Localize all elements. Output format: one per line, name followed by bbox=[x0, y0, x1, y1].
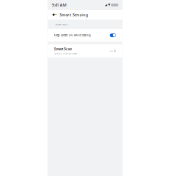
staticText: Smart Sensing bbox=[60, 12, 88, 17]
button[interactable]: Keep screen on while testing bbox=[47, 29, 122, 41]
staticText: 9:41 AM bbox=[52, 2, 67, 8]
staticText: Quickly scan QR codes bbox=[54, 52, 77, 55]
staticText: On bbox=[110, 49, 113, 52]
button[interactable]: Back bbox=[51, 11, 58, 18]
staticText: Smart Scan bbox=[54, 47, 72, 51]
staticText: Keep screen on while testing bbox=[54, 33, 91, 37]
staticText: SMART VIEW bbox=[55, 23, 67, 26]
button[interactable]: Smart Scan bbox=[47, 44, 122, 57]
